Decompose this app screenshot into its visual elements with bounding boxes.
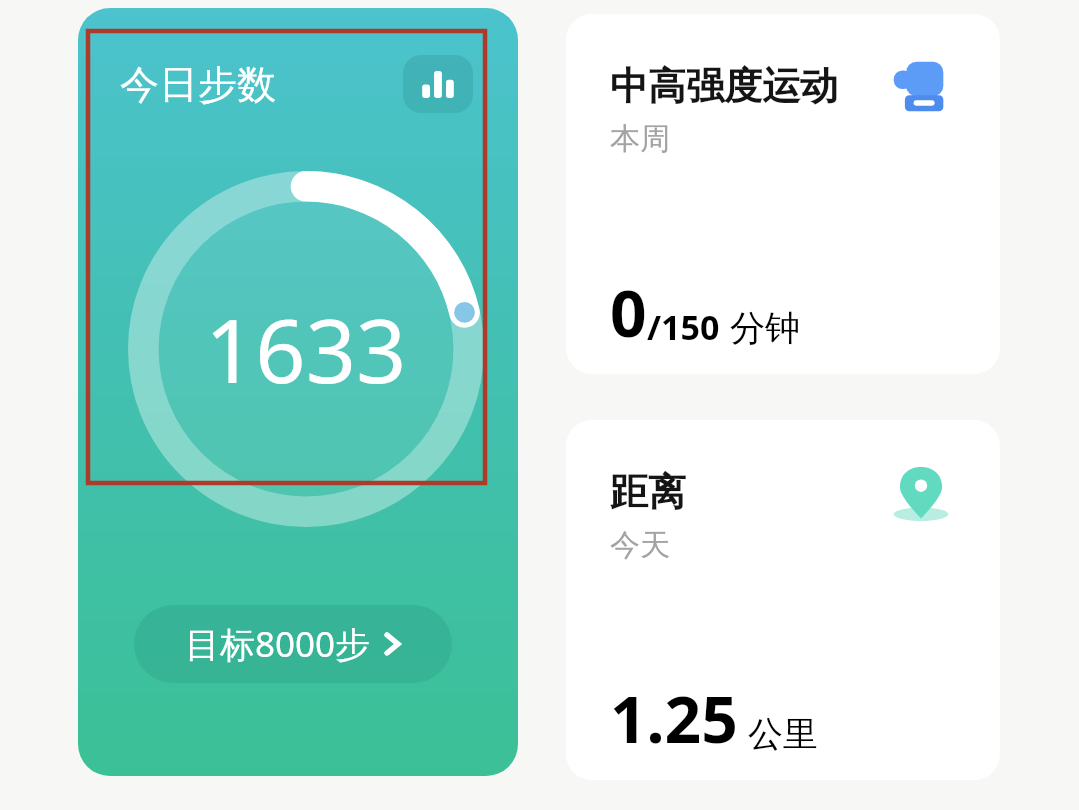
other: Exercise <box>890 58 952 120</box>
staticText: 本周 <box>610 120 670 158</box>
staticText: 公里 <box>748 712 818 756</box>
staticText: 今天 <box>610 526 670 564</box>
staticText: 0 <box>610 269 647 356</box>
button[interactable]: 中高强度运动 <box>566 14 1000 374</box>
other: Distance <box>890 464 952 526</box>
staticText: /150 <box>647 304 720 350</box>
button[interactable]: 今日步数 <box>78 8 518 776</box>
staticText: 中高强度运动 <box>610 62 838 110</box>
staticText: 分钟 <box>730 306 800 350</box>
staticText: 1.25 <box>610 675 738 762</box>
staticText: 今日步数 <box>120 60 276 109</box>
staticText: 距离 <box>610 468 686 516</box>
button[interactable]: 目标8000步 <box>134 605 452 683</box>
staticText: 1633 <box>205 289 407 409</box>
staticText: 目标8000步 <box>185 620 371 668</box>
button[interactable]: Step statistics <box>403 55 473 113</box>
button[interactable]: 距离 <box>566 420 1000 780</box>
